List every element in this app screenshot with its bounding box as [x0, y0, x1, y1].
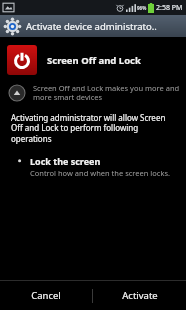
staticText: Screen Off and Lock	[47, 54, 141, 67]
staticText: 2:58 PM	[156, 3, 183, 13]
button[interactable]: Activate	[93, 281, 186, 310]
button[interactable]: Collapse details	[0, 75, 186, 103]
staticText: Activate device administrato..	[26, 20, 157, 33]
staticText: Activating administrator will allow Scre…	[11, 112, 178, 145]
staticText: Lock the screen	[30, 155, 101, 167]
staticText: Cancel	[31, 289, 61, 302]
other: Collapse details	[8, 84, 26, 102]
staticText: 96%	[137, 5, 147, 11]
staticText: Control how and when the screen locks.	[30, 168, 170, 178]
button[interactable]: Cancel	[0, 281, 92, 310]
staticText: Screen Off and Lock makes you more and m…	[33, 83, 180, 103]
staticText: Activate	[122, 289, 158, 302]
